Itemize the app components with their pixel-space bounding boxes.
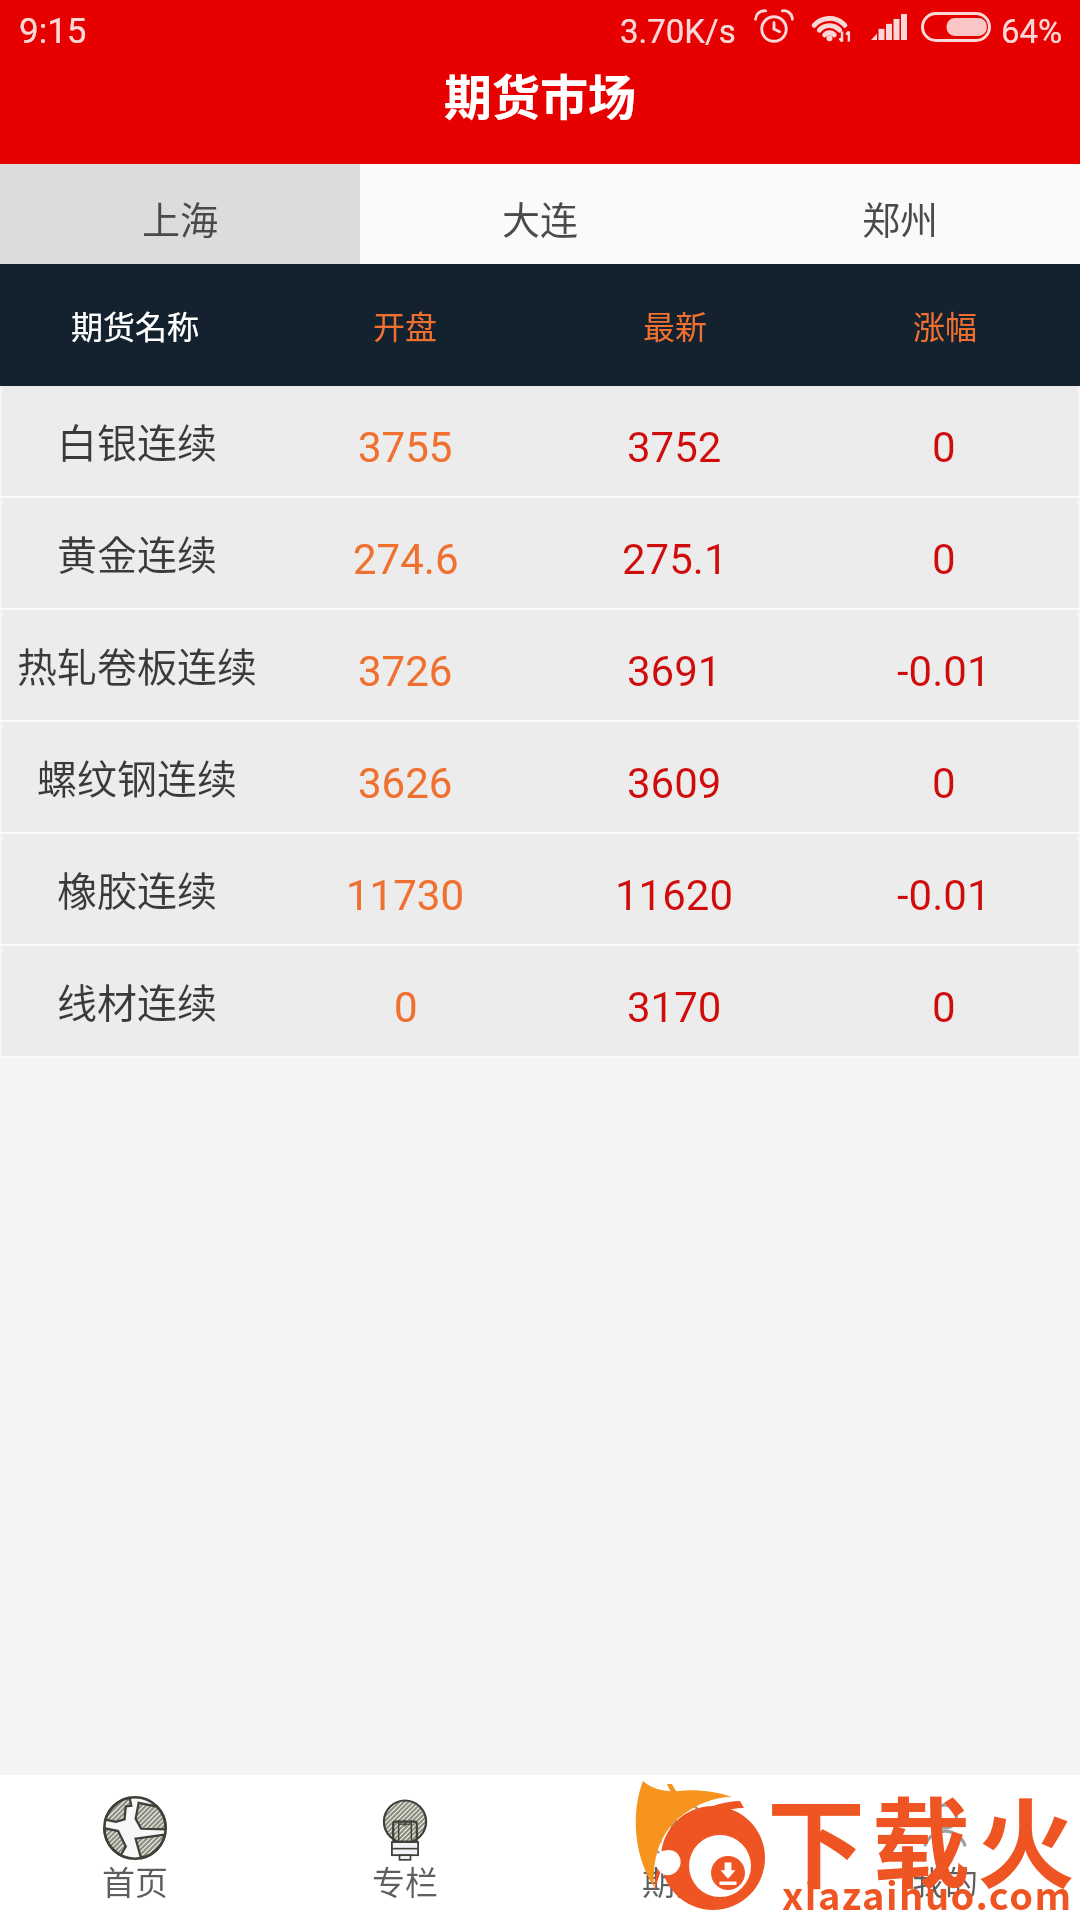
staticText: 线材连续 (57, 972, 217, 1030)
staticText: 3626 (358, 759, 453, 808)
staticText: 涨幅 (913, 302, 978, 348)
staticText: 0 (932, 759, 956, 808)
button[interactable]: 线材连续 (2, 946, 1078, 1056)
button[interactable]: 郑州 (720, 164, 1080, 264)
staticText: 9:15 (19, 11, 87, 52)
staticText: 我的 (912, 1857, 978, 1905)
staticText: 首页 (102, 1857, 168, 1905)
staticText: 3.70K/s (620, 12, 736, 51)
button[interactable]: 期货 (540, 1775, 810, 1920)
staticText: 郑州 (862, 190, 939, 245)
staticText: -0.01 (897, 647, 991, 696)
button[interactable]: 我的 (810, 1775, 1080, 1920)
button[interactable]: 黄金连续 (2, 498, 1078, 608)
staticText: 64% (1001, 12, 1063, 51)
staticText: 最新 (643, 302, 708, 348)
button[interactable]: 开盘 (270, 264, 540, 386)
button[interactable]: 螺纹钢连续 (2, 722, 1078, 832)
button[interactable]: 专栏 (270, 1775, 540, 1920)
staticText: 下载火 (767, 1766, 1080, 1908)
staticText: 3170 (627, 983, 722, 1032)
staticText: 0 (932, 423, 956, 472)
staticText: 期货 (642, 1857, 708, 1905)
staticText: 274.6 (353, 535, 459, 584)
staticText: xiazaihuo.com (782, 1866, 1073, 1920)
staticText: 3726 (358, 647, 453, 696)
staticText: 11620 (615, 871, 734, 920)
staticText: 3691 (627, 647, 722, 696)
button[interactable]: 上海 (0, 164, 360, 264)
staticText: 3752 (627, 423, 722, 472)
staticText: 螺纹钢连续 (37, 748, 237, 806)
button[interactable]: 大连 (360, 164, 720, 264)
staticText: 上海 (142, 190, 219, 245)
staticText: 橡胶连续 (57, 860, 217, 918)
staticText: 3755 (358, 423, 453, 472)
staticText: 275.1 (622, 535, 728, 584)
staticText: 0 (932, 983, 956, 1032)
staticText: 3609 (627, 759, 722, 808)
staticText: 白银连续 (57, 412, 217, 470)
staticText: 黄金连续 (57, 524, 217, 582)
staticText: 0 (394, 983, 418, 1032)
staticText: 开盘 (373, 302, 438, 348)
button[interactable]: 涨幅 (810, 264, 1080, 386)
staticText: 期货名称 (71, 302, 200, 348)
button[interactable]: 白银连续 (2, 386, 1078, 496)
staticText: 热轧卷板连续 (17, 636, 257, 694)
button[interactable]: 最新 (540, 264, 810, 386)
staticText: -0.01 (897, 871, 991, 920)
button[interactable]: 热轧卷板连续 (2, 610, 1078, 720)
staticText: 11730 (346, 871, 465, 920)
staticText: 大连 (502, 190, 579, 245)
staticText: 专栏 (372, 1857, 438, 1905)
staticText: 0 (932, 535, 956, 584)
staticText: 期货市场 (444, 59, 637, 129)
button[interactable]: 首页 (0, 1775, 270, 1920)
button[interactable]: 期货名称 (0, 264, 270, 386)
button[interactable]: 橡胶连续 (2, 834, 1078, 944)
